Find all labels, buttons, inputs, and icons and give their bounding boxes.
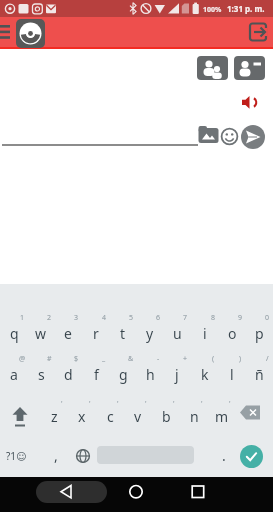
staticText: # [47, 354, 52, 363]
staticText: y [146, 324, 154, 343]
staticText: ' [229, 399, 231, 408]
button[interactable] [75, 448, 91, 464]
staticText: 5 [129, 313, 134, 322]
staticText: u [173, 324, 182, 343]
staticText: i [203, 324, 207, 343]
button[interactable]: y [137, 323, 163, 343]
staticText: g [119, 365, 128, 384]
staticText: h [146, 365, 155, 384]
staticText: n [190, 407, 199, 426]
staticText: q [10, 324, 19, 343]
button[interactable]: j [164, 364, 190, 384]
button[interactable]: s [28, 364, 54, 384]
staticText: 0 [265, 313, 270, 322]
button[interactable]: g [110, 364, 136, 384]
staticText: o [228, 324, 237, 343]
staticText: ' [61, 399, 63, 408]
button[interactable]: , [43, 445, 69, 465]
button[interactable]: q [1, 323, 27, 343]
staticText: v [134, 407, 142, 426]
staticText: m [215, 407, 229, 426]
button[interactable]: e [55, 323, 81, 343]
staticText: j [175, 365, 179, 384]
staticText: ' [117, 399, 119, 408]
button[interactable]: t [110, 323, 136, 343]
button[interactable] [189, 483, 207, 501]
button[interactable]: a [1, 364, 27, 384]
staticText: 8 [211, 313, 216, 322]
button[interactable]: p [246, 323, 272, 343]
staticText: t [120, 324, 126, 343]
staticText: - [157, 354, 160, 363]
staticText: _ [102, 354, 106, 363]
button[interactable]: w [28, 323, 54, 343]
button[interactable]: z [41, 406, 67, 426]
staticText: ' [173, 399, 175, 408]
staticText: & [128, 354, 134, 363]
button[interactable]: ñ [246, 364, 272, 384]
staticText: ) [239, 354, 242, 363]
staticText: @ [19, 354, 26, 363]
staticText: d [64, 365, 73, 384]
staticText: 100% [203, 5, 222, 15]
button[interactable] [10, 405, 30, 428]
staticText: $ [74, 354, 79, 363]
staticText: k [201, 365, 209, 384]
staticText: / [266, 354, 269, 363]
staticText: 3 [74, 313, 79, 322]
button[interactable]: f [83, 364, 109, 384]
button[interactable] [127, 483, 145, 501]
button[interactable] [198, 125, 219, 144]
button[interactable]: ?1☺ [3, 446, 30, 465]
staticText: 9 [238, 313, 243, 322]
button[interactable]: h [137, 364, 163, 384]
staticText: e [64, 324, 72, 343]
button[interactable]: x [69, 406, 95, 426]
staticText: ?1☺ [6, 449, 27, 463]
button[interactable]: o [219, 323, 245, 343]
button[interactable]: k [192, 364, 218, 384]
staticText: z [51, 407, 58, 426]
button[interactable]: i [192, 323, 218, 343]
button[interactable]: l [219, 364, 245, 384]
button[interactable] [197, 56, 228, 80]
button[interactable]: m [209, 406, 235, 426]
staticText: a [10, 365, 18, 384]
button[interactable]: u [164, 323, 190, 343]
button[interactable] [246, 21, 268, 43]
staticText: + [183, 354, 188, 363]
staticText: 1:31 p. m. [227, 3, 265, 14]
button[interactable] [16, 19, 45, 48]
staticText: b [162, 407, 171, 426]
button[interactable] [241, 125, 265, 149]
staticText: . [222, 446, 226, 465]
staticText: l [230, 365, 234, 384]
button[interactable]: . [211, 445, 237, 465]
staticText: 1 [20, 313, 25, 322]
staticText: ' [145, 399, 147, 408]
staticText: c [107, 407, 114, 426]
staticText: 7 [183, 313, 188, 322]
staticText: ' [89, 399, 91, 408]
button[interactable] [241, 95, 257, 110]
staticText: x [78, 407, 86, 426]
button[interactable]: r [83, 323, 109, 343]
button[interactable] [240, 445, 263, 468]
button[interactable]: n [181, 406, 207, 426]
button[interactable] [221, 128, 238, 145]
button[interactable]: v [125, 406, 151, 426]
staticText: 6 [156, 313, 161, 322]
staticText: ' [201, 399, 203, 408]
button[interactable] [239, 404, 263, 422]
staticText: f [94, 365, 99, 384]
button[interactable] [234, 56, 265, 80]
staticText: r [93, 324, 99, 343]
button[interactable]: d [55, 364, 81, 384]
button[interactable] [57, 483, 75, 501]
button[interactable]: c [97, 406, 123, 426]
staticText: 4 [102, 313, 107, 322]
staticText: , [54, 446, 58, 465]
button[interactable]: b [153, 406, 179, 426]
staticText: 2 [47, 313, 52, 322]
